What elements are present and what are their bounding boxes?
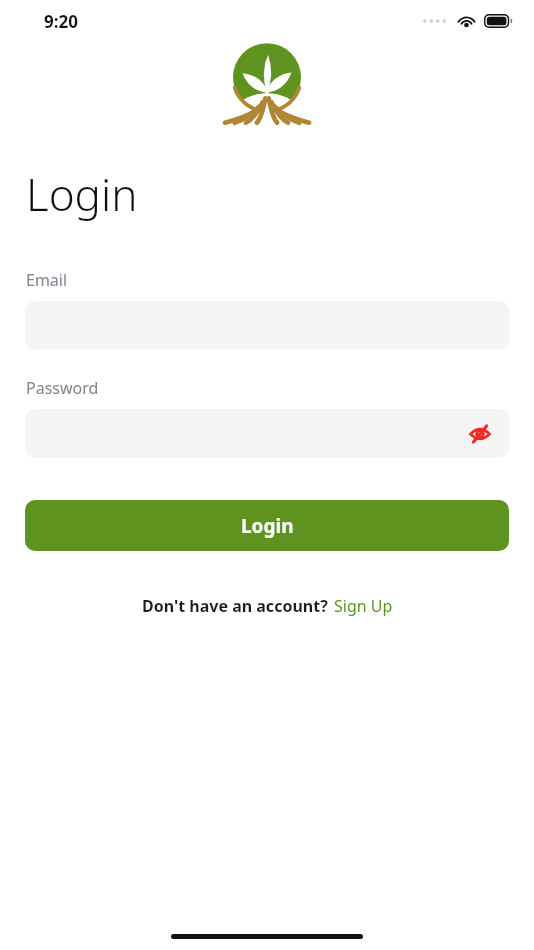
- staticText: Don't have an account?: [142, 595, 328, 617]
- staticText: 9:20: [44, 10, 78, 33]
- button[interactable]: Sign Up: [334, 595, 393, 617]
- staticText: Sign Up: [334, 595, 393, 617]
- staticText: Login: [241, 513, 294, 539]
- button[interactable]: Show password: [465, 419, 495, 449]
- button[interactable]: Login: [25, 500, 509, 551]
- staticText: Password: [26, 377, 99, 399]
- button[interactable]: Show password: [25, 409, 509, 458]
- staticText: Email: [26, 269, 68, 291]
- staticText: Login: [26, 164, 138, 224]
